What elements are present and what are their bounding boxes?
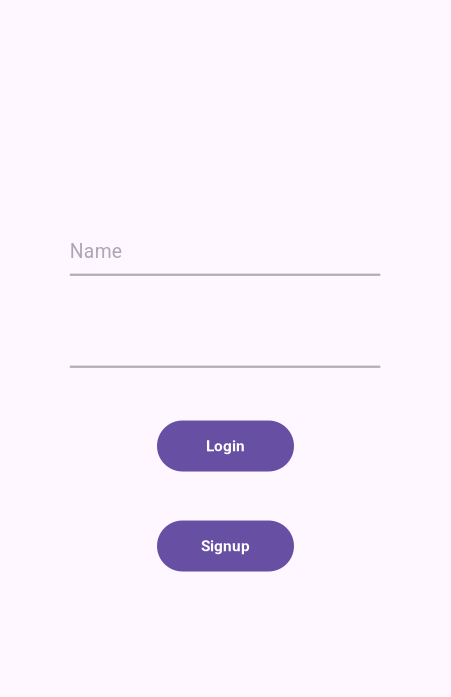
button[interactable]: Login <box>157 420 294 471</box>
button[interactable]: Signup <box>157 520 294 571</box>
staticText: Login <box>206 437 245 455</box>
staticText: Signup <box>201 537 250 555</box>
button[interactable]: Password <box>70 335 380 368</box>
staticText: Name <box>70 240 122 263</box>
button[interactable]: Name <box>70 240 380 276</box>
